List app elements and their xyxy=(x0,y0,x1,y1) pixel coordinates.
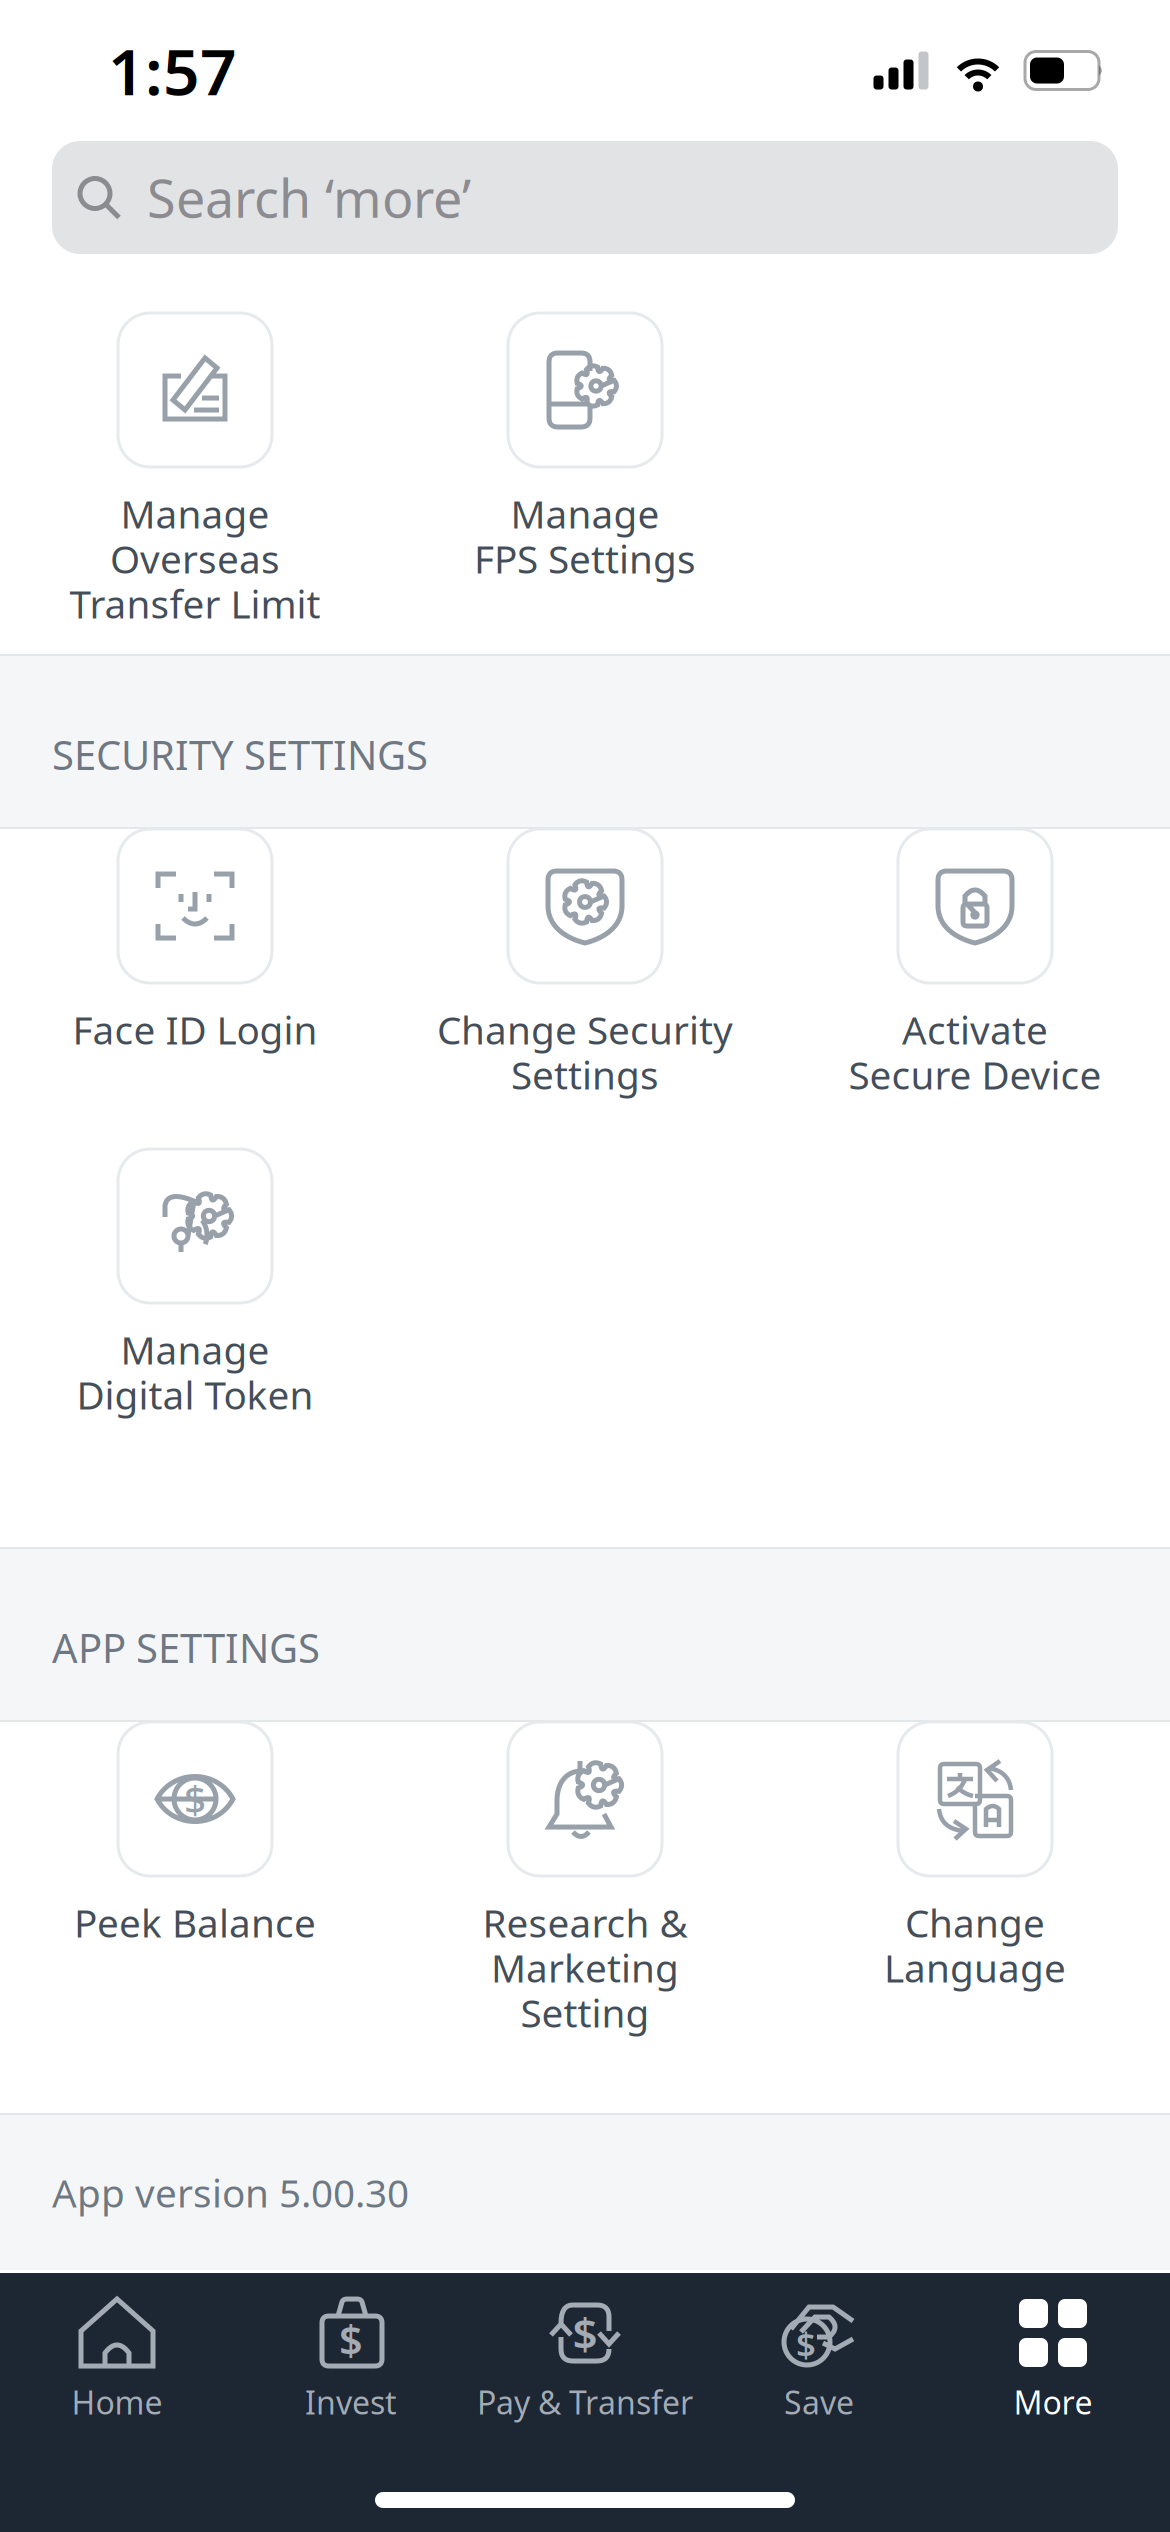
button[interactable]: Manage xyxy=(390,313,780,654)
button[interactable]: Home xyxy=(0,2291,234,2441)
staticText: $ xyxy=(184,1773,206,1825)
staticText: Transfer Limit xyxy=(69,578,320,629)
button[interactable]: Face ID Login xyxy=(0,829,390,1149)
staticText: Overseas xyxy=(110,533,280,584)
button[interactable]: Manage xyxy=(0,1149,390,1547)
staticText: Pay & Transfer xyxy=(477,2381,693,2423)
staticText: Peek Balance xyxy=(74,1897,316,1948)
staticText: FPS Settings xyxy=(474,533,696,584)
button[interactable]: $ xyxy=(468,2291,702,2441)
staticText: 1:57 xyxy=(108,28,237,113)
button[interactable]: Research & xyxy=(390,1722,780,2113)
staticText: APP SETTINGS xyxy=(52,1621,320,1674)
button[interactable]: $ xyxy=(0,1722,390,2113)
staticText: Manage xyxy=(120,488,269,539)
staticText: Home xyxy=(71,2381,162,2423)
staticText: Digital Token xyxy=(76,1369,313,1420)
staticText: Activate xyxy=(902,1004,1048,1055)
button[interactable]: Search ‘more’ xyxy=(52,141,1118,254)
staticText: Change xyxy=(905,1897,1045,1948)
button[interactable]: More xyxy=(936,2291,1170,2441)
staticText: $ xyxy=(796,2321,816,2367)
button[interactable]: Activate xyxy=(780,829,1170,1149)
button[interactable]: Change Security xyxy=(390,829,780,1149)
staticText: Marketing xyxy=(491,1942,679,1993)
staticText: Invest xyxy=(305,2381,397,2423)
staticText: Manage xyxy=(120,1324,269,1375)
staticText: $ xyxy=(572,2304,597,2362)
staticText: Language xyxy=(884,1942,1066,1993)
staticText: Search ‘more’ xyxy=(147,163,471,232)
button[interactable]: $ xyxy=(702,2291,936,2441)
staticText: $ xyxy=(339,2313,363,2367)
staticText: Settings xyxy=(511,1049,659,1100)
staticText: More xyxy=(1013,2381,1092,2423)
staticText: App version 5.00.30 xyxy=(52,2167,409,2218)
staticText: Setting xyxy=(520,1987,649,2038)
staticText: Research & xyxy=(482,1897,687,1948)
button[interactable]: $ xyxy=(234,2291,468,2441)
button[interactable]: Manage xyxy=(0,313,390,654)
button[interactable]: Change xyxy=(780,1722,1170,2113)
staticText: Face ID Login xyxy=(72,1004,317,1055)
staticText: SECURITY SETTINGS xyxy=(52,728,428,781)
staticText: Secure Device xyxy=(848,1049,1101,1100)
staticText: Change Security xyxy=(437,1004,733,1055)
staticText: Manage xyxy=(510,488,659,539)
staticText: Save xyxy=(784,2381,854,2423)
